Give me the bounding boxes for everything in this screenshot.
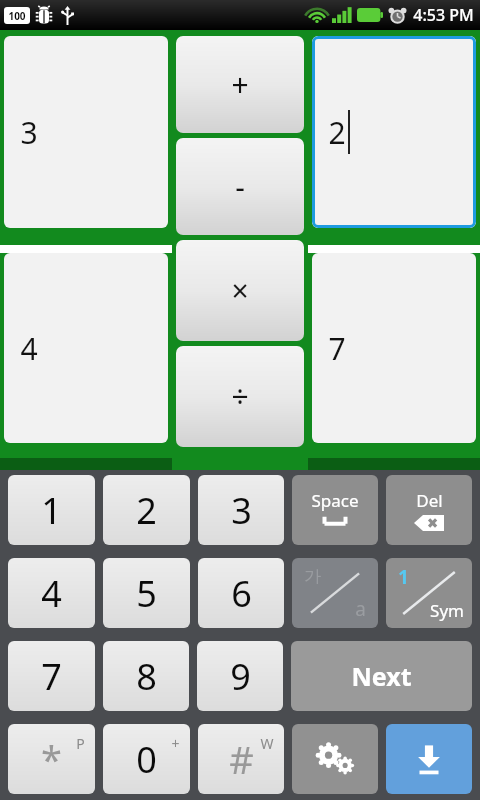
staticText: # [229, 733, 254, 785]
button[interactable]: Settings [292, 724, 378, 794]
button[interactable]: Hide keyboard [386, 724, 472, 794]
staticText: 100 [8, 9, 26, 23]
staticText: Sym [430, 599, 464, 622]
button[interactable]: 6 [198, 558, 284, 628]
button[interactable]: ÷ [176, 346, 304, 447]
button[interactable]: 9 [197, 641, 283, 711]
staticText: 3 [20, 112, 38, 153]
staticText: Space [311, 489, 359, 512]
button[interactable]: + [176, 36, 304, 133]
button[interactable]: Switch language [292, 558, 378, 628]
staticText: × [231, 270, 249, 311]
staticText: Next [351, 659, 412, 693]
button[interactable]: Symbols [386, 558, 472, 628]
button[interactable]: # [198, 724, 284, 794]
staticText: 4 [20, 328, 38, 369]
staticText: W [260, 734, 274, 753]
staticText: 4:53 PM [413, 4, 474, 26]
button[interactable]: Del [386, 475, 472, 545]
staticText: 4 [41, 569, 62, 618]
staticText: P [76, 734, 85, 753]
staticText: 9 [230, 652, 251, 701]
button[interactable]: 2 [103, 475, 190, 545]
staticText: 1 [398, 564, 409, 590]
button[interactable]: Space [292, 475, 378, 545]
staticText: - [235, 166, 245, 207]
button[interactable]: - [176, 138, 304, 235]
staticText: a [355, 596, 366, 622]
button[interactable]: 1 [8, 475, 95, 545]
button[interactable]: 7 [8, 641, 95, 711]
button[interactable]: 0 [103, 724, 190, 794]
staticText: 2 [328, 112, 346, 153]
staticText: + [231, 64, 249, 105]
staticText: 7 [41, 652, 62, 701]
staticText: 7 [328, 328, 346, 369]
button[interactable]: 3 [198, 475, 284, 545]
staticText: 0 [136, 735, 157, 784]
button[interactable]: × [176, 240, 304, 341]
staticText: Del [416, 489, 443, 512]
button[interactable]: 2 [312, 36, 476, 228]
button[interactable]: 7 [312, 253, 476, 443]
button[interactable]: 8 [103, 641, 189, 711]
button[interactable]: * [8, 724, 95, 794]
staticText: 8 [136, 652, 157, 701]
staticText: 1 [41, 486, 62, 535]
staticText: ÷ [231, 376, 249, 417]
button[interactable]: Next [291, 641, 472, 711]
button[interactable]: 4 [8, 558, 95, 628]
staticText: 3 [231, 486, 252, 535]
staticText: 5 [136, 569, 157, 618]
button[interactable]: 4 [4, 253, 168, 443]
staticText: 6 [231, 569, 252, 618]
staticText: + [171, 734, 180, 753]
staticText: 가 [304, 566, 321, 587]
staticText: 2 [136, 486, 157, 535]
button[interactable]: 3 [4, 36, 168, 228]
button[interactable]: 5 [103, 558, 190, 628]
staticText: * [41, 733, 62, 785]
